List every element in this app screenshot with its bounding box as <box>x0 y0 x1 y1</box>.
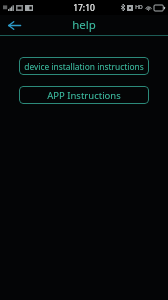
button[interactable]: Back <box>0 15 28 35</box>
button[interactable]: APP Instructions <box>19 86 149 104</box>
staticText: 17:10 <box>73 2 95 14</box>
staticText: help <box>72 17 96 33</box>
staticText: device installation instructions <box>24 61 144 72</box>
staticText: HD <box>135 4 143 11</box>
button[interactable]: device installation instructions <box>19 57 149 75</box>
staticText: APP Instructions <box>47 89 121 102</box>
